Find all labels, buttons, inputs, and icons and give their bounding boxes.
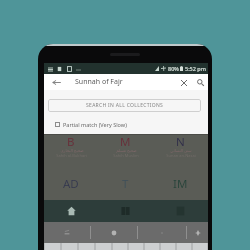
staticText: 5:52 pm (185, 65, 206, 72)
button[interactable]: Settings (187, 222, 208, 243)
button[interactable]: Clear (176, 75, 192, 90)
staticText: AD (63, 176, 79, 192)
staticText: Sahih Muslim (113, 153, 139, 158)
button[interactable]: B (44, 135, 98, 174)
staticText: سنن النسائي (170, 148, 192, 153)
staticText: N (176, 134, 185, 150)
staticText: Sunnah of Fajr (75, 77, 123, 87)
staticText: B (67, 134, 75, 150)
staticText: IM (173, 176, 188, 192)
button[interactable]: N (153, 135, 208, 174)
button[interactable]: Search (192, 75, 208, 90)
button[interactable]: AD (44, 174, 98, 200)
button[interactable]: IM (153, 174, 208, 200)
button[interactable]: SEARCH IN ALL COLLECTIONS (48, 99, 201, 112)
staticText: Sunan an-Nasai (166, 153, 196, 158)
button[interactable]: Voice input (91, 222, 137, 243)
button[interactable]: Home (44, 200, 98, 222)
button[interactable]: Collections (98, 200, 153, 222)
staticText: M (120, 134, 131, 150)
staticText: SEARCH IN ALL COLLECTIONS (86, 102, 164, 109)
staticText: صحيح مسلم (116, 148, 137, 153)
staticText: Sahih al-Bukhari (56, 153, 87, 158)
button[interactable]: M (98, 135, 153, 174)
staticText: Partial match (Very Slow) (63, 121, 127, 128)
button[interactable]: Back (44, 74, 69, 90)
staticText: صحيح البخاري (60, 148, 84, 153)
staticText: T (122, 176, 129, 192)
button[interactable]: Partial match (Very Slow) (55, 121, 208, 128)
staticText: 80% (168, 65, 179, 72)
